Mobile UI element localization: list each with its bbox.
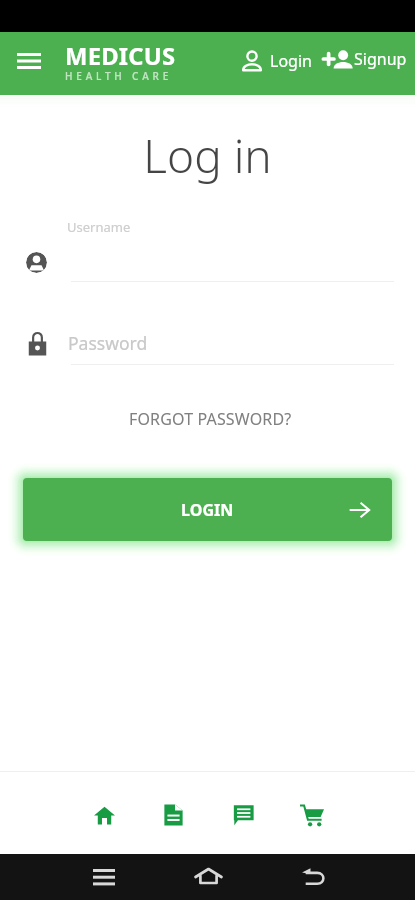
staticText: Signup: [354, 48, 407, 70]
staticText: Password: [68, 331, 148, 355]
button[interactable]: Login: [241, 50, 312, 72]
button[interactable]: Signup: [324, 48, 407, 70]
staticText: Username: [67, 218, 131, 236]
staticText: FORGOT PASSWORD?: [129, 408, 292, 430]
staticText: HEALTH CARE: [65, 69, 173, 83]
button[interactable]: Home: [80, 791, 128, 839]
button[interactable]: Cart: [288, 791, 336, 839]
button[interactable]: Messages: [219, 791, 267, 839]
button[interactable]: Back: [291, 855, 335, 899]
staticText: MEDICUS: [65, 40, 176, 72]
button[interactable]: LOGIN: [23, 478, 392, 541]
staticText: Log in: [0, 124, 415, 187]
button[interactable]: FORGOT PASSWORD?: [119, 403, 302, 435]
staticText: Login: [270, 50, 312, 72]
button[interactable]: Menu: [9, 41, 49, 81]
button[interactable]: Recents: [82, 855, 126, 899]
button[interactable]: Home: [186, 855, 230, 899]
button[interactable]: Documents: [149, 791, 197, 839]
staticText: LOGIN: [181, 499, 234, 521]
